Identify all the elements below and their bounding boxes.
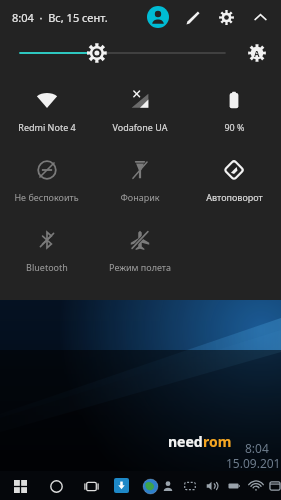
button[interactable]: Не беспокоить: [0, 148, 93, 218]
button[interactable]: Search: [45, 475, 67, 497]
button[interactable]: Collapse: [249, 6, 271, 28]
staticText: Фонарик: [120, 191, 160, 203]
button[interactable]: Vodafone UA: [93, 78, 187, 148]
button[interactable]: Brightness: [20, 40, 237, 66]
button[interactable]: App: [114, 478, 129, 493]
staticText: rom: [203, 432, 232, 451]
staticText: 90 %: [224, 121, 245, 133]
button[interactable]: Browser: [142, 478, 158, 494]
staticText: Не беспокоить: [14, 191, 79, 203]
staticText: Автоповорот: [206, 191, 263, 203]
button[interactable]: People: [158, 476, 177, 495]
button[interactable]: Автоповорот: [187, 148, 281, 218]
button[interactable]: Action center: [268, 476, 281, 495]
button[interactable]: Touch keyboard: [180, 476, 199, 495]
button[interactable]: Фонарик: [93, 148, 187, 218]
button[interactable]: Bluetooth: [0, 218, 93, 288]
staticText: Bluetooth: [26, 261, 68, 273]
button[interactable]: Wi-Fi: [246, 476, 265, 495]
button[interactable]: Auto brightness: [245, 41, 269, 65]
staticText: 8:04 · Вс, 15 сент.: [12, 10, 108, 25]
button[interactable]: Режим полета: [93, 218, 187, 288]
staticText: Vodafone UA: [112, 121, 168, 133]
button[interactable]: Volume: [202, 476, 221, 495]
button[interactable]: Redmi Note 4: [0, 78, 93, 148]
staticText: 8:04: [245, 440, 269, 456]
staticText: 15.09.2019: [226, 455, 281, 471]
button[interactable]: Battery: [224, 476, 243, 495]
staticText: need: [168, 432, 203, 451]
button[interactable]: Task view: [80, 475, 102, 497]
staticText: Режим полета: [109, 261, 171, 273]
button[interactable]: User account: [147, 6, 169, 28]
button[interactable]: 90 %: [187, 78, 281, 148]
button[interactable]: Edit: [181, 6, 203, 28]
button[interactable]: Settings: [215, 6, 237, 28]
staticText: A: [254, 48, 260, 59]
staticText: Redmi Note 4: [18, 121, 76, 133]
button[interactable]: Start: [9, 475, 31, 497]
